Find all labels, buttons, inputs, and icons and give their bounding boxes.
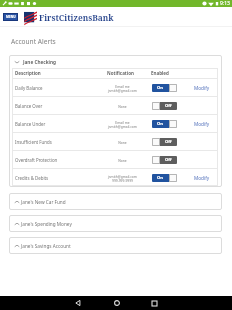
staticText: jsmith@gmail.com [108, 124, 137, 128]
button[interactable]: Enabled, Off [152, 156, 177, 164]
staticText: Jane's New Car Fund [21, 199, 66, 205]
button[interactable]: Enabled, On [152, 174, 177, 182]
staticText: None [118, 140, 127, 144]
button[interactable]: Home [107, 296, 126, 310]
staticText: Enabled [151, 70, 169, 76]
staticText: Off [165, 103, 172, 109]
button[interactable]: Modify [192, 115, 212, 132]
button[interactable]: Overdraft Protection [12, 151, 218, 168]
button[interactable]: Balance Over [12, 97, 218, 114]
staticText: jsmith@gmail.com [108, 174, 137, 178]
staticText: Jane's Spending Money [21, 221, 72, 227]
button[interactable]: Daily Balance [12, 79, 218, 96]
staticText: Modify [194, 121, 210, 127]
staticText: Email me [115, 84, 130, 88]
staticText: Notification [107, 70, 134, 76]
staticText: On [157, 175, 164, 181]
staticText: None [118, 158, 127, 162]
staticText: Jane Checking [23, 59, 57, 65]
button[interactable]: Enabled, Off [152, 138, 177, 146]
staticText: Balance Under [15, 121, 46, 127]
button[interactable]: Enabled, On [152, 84, 177, 92]
button[interactable]: Modify [192, 79, 212, 96]
staticText: On [157, 121, 164, 127]
button[interactable]: Back [68, 296, 87, 310]
staticText: Modify [194, 175, 210, 181]
staticText: Jane's Savings Account [21, 243, 71, 249]
button[interactable]: Insufficient Funds [12, 133, 218, 150]
staticText: None [118, 104, 127, 108]
staticText: Off [165, 139, 172, 145]
staticText: Email me [115, 120, 130, 124]
staticText: FirstCitizensBank [39, 12, 114, 23]
staticText: Daily Balance [15, 85, 43, 91]
button[interactable]: Balance Under [12, 115, 218, 132]
button[interactable]: Jane Checking [9, 55, 222, 68]
button[interactable]: Enabled, On [152, 120, 177, 128]
staticText: Description [15, 70, 41, 76]
button[interactable]: Jane's Spending Money [9, 215, 222, 232]
staticText: 9:13 [220, 0, 230, 7]
staticText: jsmith@gmail.com [108, 88, 137, 92]
button[interactable]: Credits & Debits [12, 169, 218, 186]
staticText: 999-999-9999 [112, 178, 133, 182]
button[interactable]: Jane's Savings Account [9, 237, 222, 254]
staticText: Credits & Debits [15, 175, 49, 181]
button[interactable]: Modify [192, 169, 212, 186]
staticText: Off [165, 157, 172, 163]
button[interactable]: Enabled, Off [152, 102, 177, 110]
staticText: Overdraft Protection [15, 157, 58, 163]
staticText: Account Alerts [11, 37, 56, 46]
button[interactable]: Jane's New Car Fund [9, 193, 222, 210]
button[interactable]: Menu [3, 13, 18, 21]
staticText: Insufficient Funds [15, 139, 52, 145]
staticText: On [157, 85, 164, 91]
staticText: Balance Over [15, 103, 43, 109]
staticText: MENU [6, 15, 16, 19]
button[interactable]: Recent apps [145, 296, 164, 310]
staticText: Modify [194, 85, 210, 91]
